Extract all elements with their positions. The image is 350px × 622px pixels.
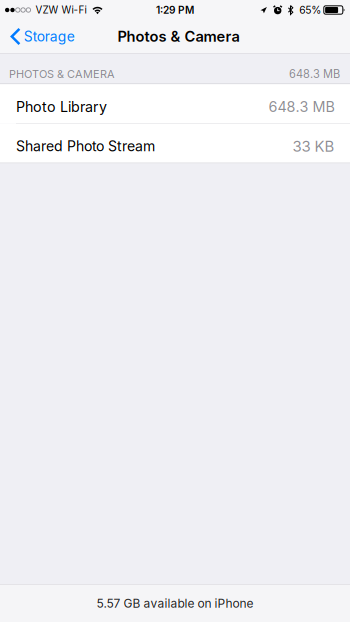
staticText: Storage xyxy=(24,28,75,45)
staticText: 648.3 MB xyxy=(268,98,334,115)
staticText: 1:29 PM xyxy=(156,4,194,16)
button[interactable]: Storage xyxy=(0,20,83,53)
staticText: 648.3 MB xyxy=(289,67,340,81)
staticText: PHOTOS & CAMERA xyxy=(9,67,115,80)
button[interactable]: Photo Library xyxy=(0,84,350,123)
staticText: 5.57 GB available on iPhone xyxy=(96,596,253,610)
button[interactable]: Shared Photo Stream xyxy=(0,124,350,163)
staticText: Photo Library xyxy=(16,98,107,115)
staticText: 33 KB xyxy=(292,137,334,155)
staticText: 65% xyxy=(299,4,321,16)
staticText: VZW Wi-Fi xyxy=(36,4,87,16)
staticText: Photos & Camera xyxy=(117,28,239,45)
staticText: Shared Photo Stream xyxy=(16,138,155,155)
